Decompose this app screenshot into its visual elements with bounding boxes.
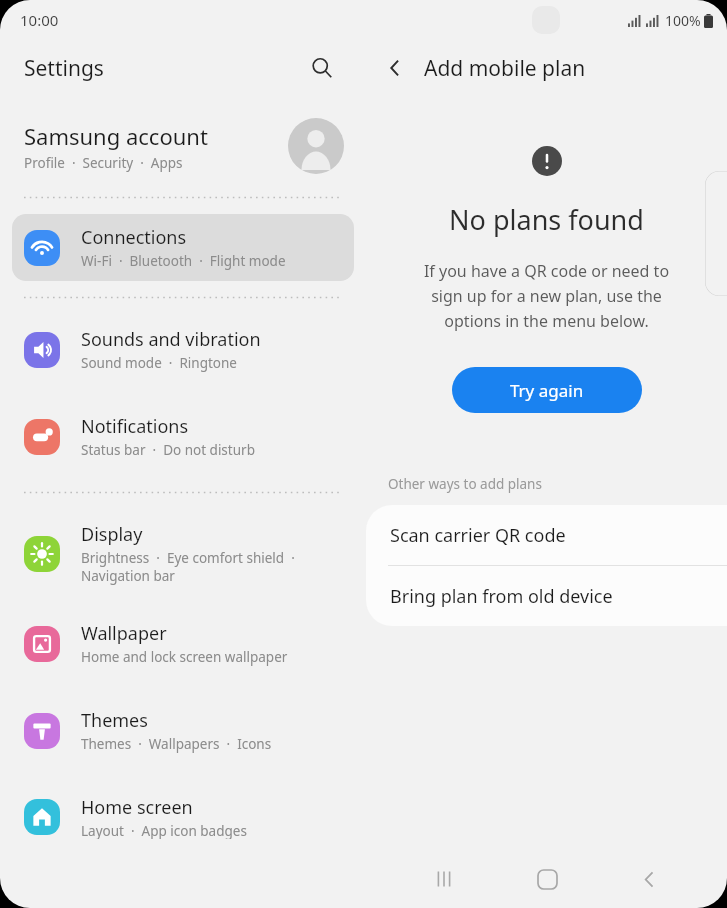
staticText: Other ways to add plans xyxy=(388,475,542,493)
staticText: Add mobile plan xyxy=(424,54,586,83)
button[interactable]: Notifications xyxy=(12,403,354,470)
staticText: Home and lock screen wallpaper xyxy=(81,648,288,666)
staticText: Layout · App icon badges xyxy=(81,822,247,839)
staticText: Scan carrier QR code xyxy=(390,523,566,548)
staticText: Themes xyxy=(81,708,148,733)
staticText: If you have a QR code or need to sign up… xyxy=(402,260,691,331)
staticText: Home screen xyxy=(81,795,193,820)
button[interactable]: Back xyxy=(625,855,673,903)
staticText: No plans found xyxy=(366,201,727,238)
staticText: 100% xyxy=(665,11,701,30)
staticText: Try again xyxy=(510,379,584,402)
staticText: Wallpaper xyxy=(81,621,167,646)
staticText: Sounds and vibration xyxy=(81,327,261,352)
button[interactable]: Home screen xyxy=(12,784,354,850)
staticText: Sound mode · Ringtone xyxy=(81,354,237,372)
staticText: Settings xyxy=(24,54,104,83)
staticText: Bring plan from old device xyxy=(390,584,613,609)
staticText: Wi-Fi · Bluetooth · Flight mode xyxy=(81,252,286,270)
button[interactable]: Search xyxy=(302,48,342,88)
staticText: Connections xyxy=(81,225,187,250)
button[interactable]: Bring plan from old device xyxy=(366,566,727,626)
button[interactable]: Back xyxy=(374,47,416,89)
staticText: 10:00 xyxy=(20,10,59,30)
staticText: Notifications xyxy=(81,414,189,439)
staticText: Profile · Security · Apps xyxy=(24,154,183,172)
staticText: Brightness · Eye comfort shield · Naviga… xyxy=(81,549,295,585)
button[interactable]: Connections xyxy=(12,214,354,281)
button[interactable]: Recents xyxy=(420,855,468,903)
button[interactable]: Samsung account xyxy=(0,112,366,180)
button[interactable]: Sounds and vibration xyxy=(12,316,354,383)
staticText: Samsung account xyxy=(24,121,208,151)
button[interactable]: Scan carrier QR code xyxy=(366,505,727,565)
staticText: Themes · Wallpapers · Icons xyxy=(81,735,272,753)
button[interactable]: Try again xyxy=(452,367,642,413)
button[interactable]: Home xyxy=(523,855,571,903)
staticText: Status bar · Do not disturb xyxy=(81,441,255,459)
button[interactable]: Wallpaper xyxy=(12,610,354,677)
button[interactable]: Themes xyxy=(12,697,354,764)
button[interactable]: Display xyxy=(12,511,354,596)
staticText: Display xyxy=(81,522,143,547)
